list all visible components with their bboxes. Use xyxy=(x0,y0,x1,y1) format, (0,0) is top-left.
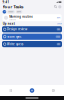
button[interactable]: Design review xyxy=(2,26,62,32)
staticText: All xyxy=(4,11,5,13)
staticText: Up next xyxy=(3,22,15,25)
staticText: Morning routine xyxy=(9,15,33,18)
button[interactable]: Tasks xyxy=(0,89,21,92)
button[interactable]: See all xyxy=(57,23,61,25)
staticText: 60% xyxy=(57,17,60,19)
button[interactable]: Today xyxy=(7,10,15,14)
staticText: 3 of 5 done xyxy=(9,19,16,20)
staticText: 11a xyxy=(57,36,60,38)
staticText: Today xyxy=(8,11,13,13)
staticText: Team sync xyxy=(7,35,21,38)
staticText: Design review xyxy=(7,27,27,31)
staticText: Done xyxy=(17,11,21,13)
button[interactable]: Team sync xyxy=(2,34,62,40)
button[interactable]: Add task xyxy=(21,88,43,93)
staticText: 2p xyxy=(58,43,60,45)
staticText: Write specs xyxy=(7,42,23,46)
button[interactable]: Settings xyxy=(43,89,64,92)
button[interactable]: Write specs xyxy=(2,41,62,47)
staticText: Your Tasks xyxy=(3,4,24,9)
button[interactable]: Profile xyxy=(58,5,61,8)
staticText: 9:41 xyxy=(3,0,10,4)
button[interactable]: Done xyxy=(16,10,22,14)
staticText: See all xyxy=(57,23,61,25)
button[interactable]: All xyxy=(3,10,6,14)
staticText: 9a xyxy=(58,28,60,30)
button[interactable]: Search xyxy=(54,5,57,8)
